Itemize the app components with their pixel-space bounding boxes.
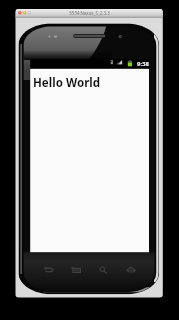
button[interactable]: Menu xyxy=(65,259,88,281)
button[interactable]: Back xyxy=(37,259,60,281)
staticText: 9:38 xyxy=(137,60,149,68)
staticText: Hello World xyxy=(33,75,101,89)
staticText: 5554:Nexus_S_2.3.3 xyxy=(69,10,110,16)
button[interactable]: Home xyxy=(120,259,143,281)
button[interactable]: Search xyxy=(92,259,115,281)
